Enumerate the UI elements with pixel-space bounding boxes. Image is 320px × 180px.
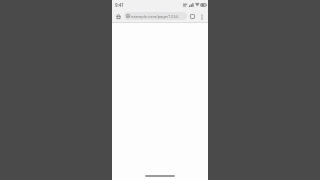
button[interactable]: Home (114, 12, 123, 21)
staticText: 9:41 (115, 2, 124, 8)
button[interactable]: Switch tabs (188, 12, 197, 21)
staticText: example.com/page/1234-abcd (131, 14, 185, 19)
button[interactable]: example.com/page/1234-abcd (124, 12, 187, 20)
button[interactable]: More options (197, 12, 206, 21)
